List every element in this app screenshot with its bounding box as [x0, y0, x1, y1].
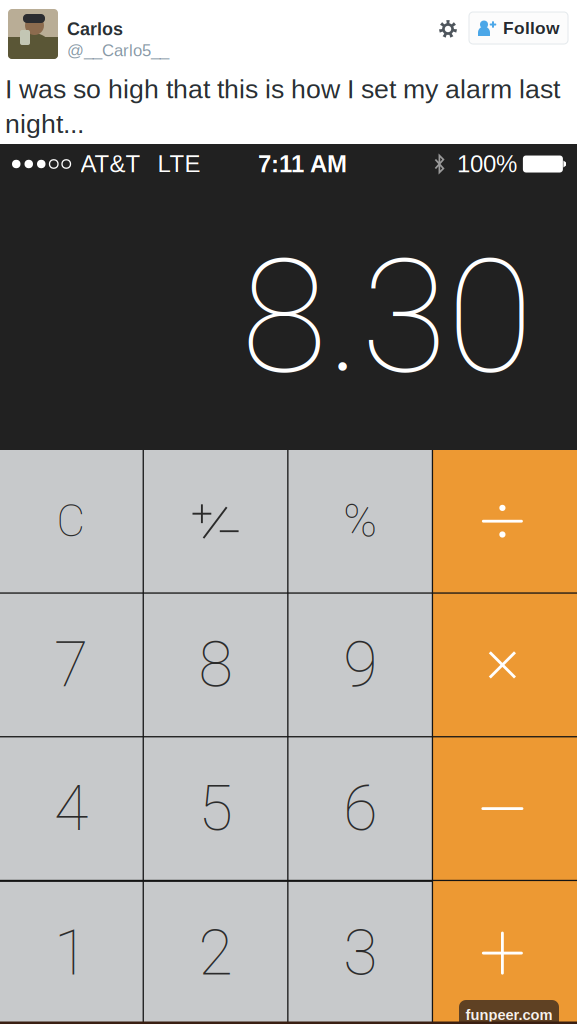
staticText: AT&T	[80, 151, 140, 177]
staticText: 5	[199, 772, 233, 845]
staticText: 1	[54, 916, 88, 990]
staticText: 100%	[457, 151, 517, 177]
staticText: 6	[343, 772, 377, 845]
staticText: C	[56, 495, 85, 547]
button[interactable]: 4	[0, 737, 143, 880]
staticText: 7	[54, 628, 88, 702]
staticText: 8.30	[241, 225, 533, 409]
staticText: 2	[199, 916, 233, 990]
button[interactable]: 2	[144, 882, 287, 1024]
button[interactable]: 9	[288, 594, 432, 736]
staticText: night...	[5, 109, 84, 139]
staticText: Follow	[503, 18, 559, 38]
button[interactable]	[433, 450, 577, 592]
button[interactable]: C	[0, 450, 143, 592]
button[interactable]: 7	[0, 594, 143, 736]
button[interactable]: 6	[288, 737, 432, 880]
button[interactable]: Follow	[469, 12, 568, 44]
button[interactable]: 5	[144, 737, 287, 880]
staticText: 9	[343, 628, 377, 702]
button[interactable]: Settings	[432, 13, 464, 45]
staticText: I was so high that this is how I set my …	[5, 74, 560, 104]
staticText: @__Carlo5__	[67, 41, 169, 60]
button[interactable]: %	[288, 450, 432, 592]
staticText: %	[343, 495, 377, 548]
staticText: 7:11 AM	[258, 151, 347, 177]
button[interactable]	[433, 737, 577, 880]
staticText: LTE	[157, 151, 200, 177]
button[interactable]: 8	[144, 594, 287, 736]
staticText: funpeer.com	[465, 1007, 552, 1023]
staticText: 4	[54, 772, 88, 845]
staticText: Carlos	[67, 19, 123, 39]
button[interactable]: 3	[288, 882, 432, 1024]
staticText: 8	[199, 628, 233, 702]
button[interactable]	[144, 450, 287, 592]
button[interactable]	[433, 594, 577, 736]
staticText: 3	[343, 916, 377, 990]
button[interactable]: 1	[0, 882, 143, 1024]
button[interactable]	[433, 881, 577, 1024]
